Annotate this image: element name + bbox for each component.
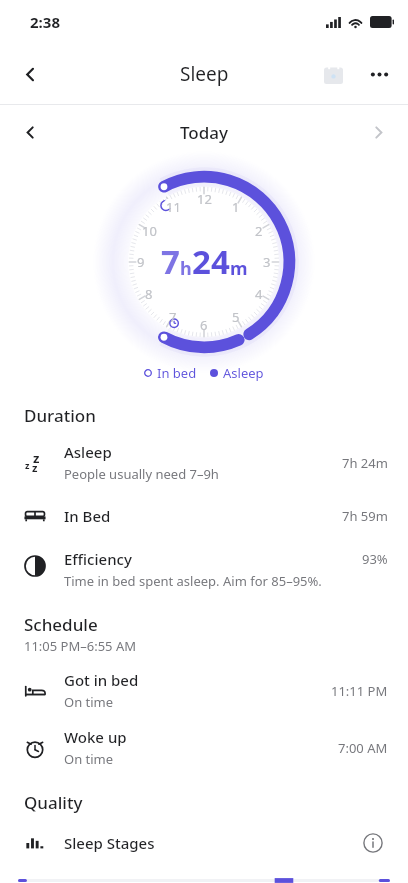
staticText: 8	[145, 285, 153, 303]
staticText: 10	[142, 222, 157, 240]
staticText: 1	[232, 198, 240, 216]
staticText: Asleep	[64, 442, 112, 462]
button[interactable]: In Bed	[0, 492, 408, 540]
staticText: On time	[64, 750, 114, 768]
staticText: Today	[180, 121, 228, 144]
staticText: People usually need 7–9h	[64, 465, 219, 483]
staticText: 2:38	[30, 12, 60, 32]
staticText: 24	[192, 239, 230, 284]
button[interactable]: Calendar	[310, 51, 356, 97]
staticText: Woke up	[64, 727, 127, 747]
staticText: 2	[255, 222, 263, 240]
staticText: 6	[200, 316, 208, 334]
staticText: Schedule	[24, 613, 98, 636]
staticText: 7	[161, 239, 180, 284]
button[interactable]: Back	[8, 52, 52, 96]
staticText: 11	[166, 198, 181, 216]
staticText: Duration	[24, 404, 96, 427]
staticText: 9	[137, 253, 145, 271]
staticText: 5	[232, 308, 240, 326]
staticText: Sleep Stages	[64, 833, 356, 853]
staticText: Asleep	[223, 364, 264, 382]
staticText: 3	[263, 253, 271, 271]
button[interactable]: z	[0, 435, 408, 490]
staticText: 11:05 PM–6:55 AM	[24, 637, 137, 655]
staticText: Quality	[24, 791, 83, 814]
staticText: 7	[169, 308, 177, 326]
staticText: 11:11 PM	[331, 682, 388, 700]
staticText: Time in bed spent asleep. Aim for 85–95%…	[64, 572, 322, 590]
button[interactable]: Efficiency	[0, 542, 408, 597]
staticText: 93%	[362, 550, 388, 568]
button[interactable]: Previous day	[8, 110, 52, 154]
button[interactable]: Sleep Stages	[0, 826, 408, 860]
button[interactable]: Woke up	[0, 720, 408, 775]
staticText: In bed	[157, 364, 197, 382]
button[interactable]: More options	[356, 51, 402, 97]
staticText: Got in bed	[64, 670, 139, 690]
staticText: h	[180, 256, 192, 281]
button[interactable]: Next day	[356, 110, 400, 154]
staticText: z	[25, 459, 30, 471]
staticText: 7h 24m	[342, 454, 388, 472]
staticText: 12	[197, 190, 212, 208]
staticText: 7:00 AM	[338, 739, 388, 757]
staticText: 7h 59m	[342, 507, 388, 525]
staticText: Efficiency	[64, 549, 132, 569]
staticText: On time	[64, 693, 114, 711]
staticText: m	[230, 256, 248, 281]
staticText: Sleep	[180, 61, 229, 87]
staticText: z	[33, 449, 40, 467]
staticText: In Bed	[64, 506, 111, 526]
staticText: z	[32, 460, 38, 475]
staticText: 4	[255, 285, 263, 303]
button[interactable]: Got in bed	[0, 663, 408, 718]
button[interactable]: Info about sleep stages	[356, 826, 390, 860]
